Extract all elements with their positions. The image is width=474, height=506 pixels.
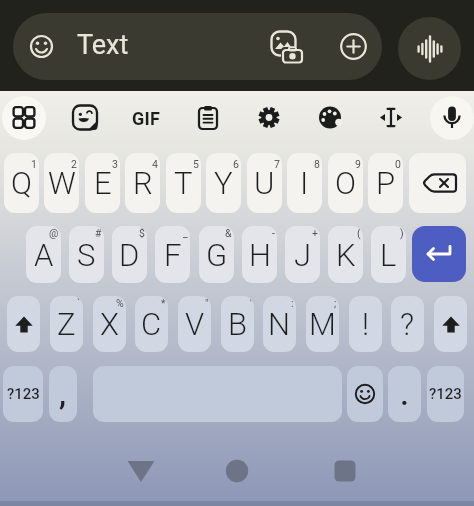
staticText: U — [254, 165, 275, 201]
button[interactable]: S — [69, 226, 104, 283]
staticText: W — [48, 165, 76, 201]
button[interactable]: M — [306, 296, 339, 352]
button[interactable]: E — [85, 153, 120, 213]
staticText: ` — [77, 297, 81, 309]
staticText: H — [249, 237, 271, 273]
staticText: F — [164, 237, 182, 273]
button[interactable]: , — [49, 366, 77, 422]
button[interactable] — [305, 92, 355, 144]
staticText: J — [294, 237, 312, 273]
staticText: L — [380, 237, 397, 273]
staticText: D — [119, 237, 140, 273]
staticText: K — [336, 237, 356, 273]
button[interactable]: T — [166, 153, 201, 213]
staticText: + — [312, 227, 318, 239]
button[interactable] — [347, 366, 383, 422]
button[interactable] — [366, 92, 416, 144]
staticText: ; — [334, 297, 337, 309]
button[interactable]: ?123 — [427, 366, 464, 422]
button[interactable]: Text — [13, 13, 382, 80]
button[interactable]: L — [371, 226, 406, 283]
button[interactable]: Q — [4, 153, 39, 213]
staticText: C — [141, 306, 162, 342]
button[interactable]: O — [328, 153, 363, 213]
button[interactable]: K — [328, 226, 363, 283]
button[interactable]: Y — [206, 153, 241, 213]
button[interactable]: H — [242, 226, 277, 283]
staticText: P — [376, 165, 396, 201]
staticText: ) — [400, 227, 404, 239]
staticText: B — [228, 306, 247, 342]
staticText: 8 — [314, 158, 320, 170]
staticText: 2 — [71, 158, 77, 170]
staticText: ? — [400, 306, 415, 342]
staticText: % — [116, 297, 124, 309]
button[interactable]: A — [26, 226, 61, 283]
staticText: . — [400, 375, 409, 413]
button[interactable]: R — [125, 153, 160, 213]
button[interactable]: GIF — [121, 92, 171, 144]
staticText: X — [100, 306, 119, 342]
button[interactable]: G — [199, 226, 234, 283]
staticText: T — [174, 165, 193, 201]
button[interactable] — [412, 226, 466, 282]
button[interactable]: X — [93, 296, 126, 352]
button[interactable]: W — [44, 153, 79, 213]
staticText: S — [77, 237, 96, 273]
staticText: $ — [139, 227, 145, 239]
staticText: 0 — [395, 158, 401, 170]
button[interactable]: F — [155, 226, 190, 283]
staticText: " — [205, 297, 209, 309]
button[interactable] — [117, 447, 165, 495]
staticText: O — [335, 165, 356, 201]
staticText: & — [225, 227, 232, 239]
button[interactable]: C — [135, 296, 168, 352]
button[interactable] — [409, 153, 466, 213]
button[interactable] — [427, 92, 474, 144]
staticText: @ — [49, 227, 59, 239]
button[interactable] — [7, 296, 40, 352]
staticText: 3 — [112, 158, 118, 170]
staticText: Text — [77, 29, 129, 61]
button[interactable]: N — [263, 296, 296, 352]
button[interactable]: . — [388, 366, 421, 422]
staticText: E — [94, 165, 112, 201]
button[interactable] — [183, 92, 233, 144]
button[interactable] — [60, 92, 110, 144]
button[interactable]: U — [247, 153, 282, 213]
staticText: Y — [214, 165, 233, 201]
staticText: G — [206, 237, 228, 273]
button[interactable]: Z — [50, 296, 83, 352]
button[interactable]: ! — [349, 296, 382, 352]
staticText: ?123 — [429, 385, 462, 403]
button[interactable]: J — [285, 226, 320, 283]
staticText: 6 — [233, 158, 239, 170]
button[interactable]: V — [178, 296, 211, 352]
button[interactable]: D — [112, 226, 147, 283]
button[interactable] — [213, 447, 261, 495]
staticText: 7 — [274, 158, 280, 170]
button[interactable] — [321, 447, 369, 495]
button[interactable] — [398, 17, 461, 80]
button[interactable] — [0, 92, 49, 144]
button[interactable]: P — [368, 153, 403, 213]
staticText: * — [161, 297, 166, 309]
button[interactable] — [244, 92, 294, 144]
staticText: 4 — [152, 158, 158, 170]
staticText: - — [272, 227, 275, 239]
staticText: R — [133, 165, 153, 201]
button[interactable]: B — [221, 296, 254, 352]
staticText: M — [309, 306, 336, 342]
staticText: ?123 — [7, 385, 40, 403]
button[interactable] — [434, 296, 467, 352]
button[interactable]: ? — [391, 296, 424, 352]
staticText: ( — [357, 227, 361, 239]
staticText: # — [95, 227, 102, 239]
button[interactable]: I — [287, 153, 322, 213]
staticText: I — [300, 165, 309, 201]
staticText: 1 — [31, 158, 37, 170]
button[interactable]: ?123 — [3, 366, 43, 422]
staticText: ! — [362, 306, 369, 342]
staticText: 9 — [355, 158, 361, 170]
